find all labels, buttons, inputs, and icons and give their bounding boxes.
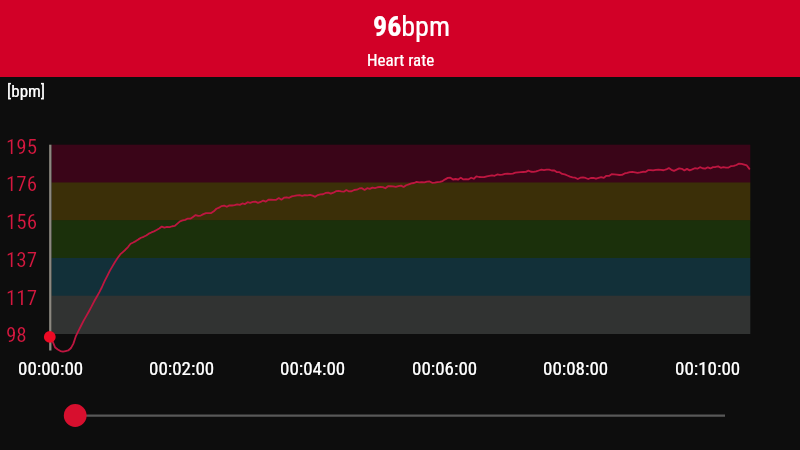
button[interactable]: Playback position slider bbox=[58, 394, 742, 438]
staticText: 176 bbox=[6, 172, 38, 197]
staticText: 156 bbox=[6, 210, 38, 235]
staticText: Heart rate bbox=[367, 50, 435, 70]
staticText: 00:08:00 bbox=[543, 357, 609, 379]
staticText: 98 bbox=[6, 323, 27, 348]
staticText: 117 bbox=[6, 286, 38, 311]
staticText: [bpm] bbox=[7, 81, 46, 101]
staticText: 00:06:00 bbox=[412, 357, 478, 379]
staticText: 00:00:00 bbox=[18, 357, 84, 379]
staticText: 00:02:00 bbox=[149, 357, 215, 379]
staticText: 96bpm bbox=[373, 10, 450, 43]
staticText: 195 bbox=[6, 135, 38, 160]
staticText: 00:04:00 bbox=[280, 357, 346, 379]
staticText: 137 bbox=[6, 248, 38, 273]
staticText: 00:10:00 bbox=[675, 357, 741, 379]
button[interactable]: 96bpm bbox=[0, 0, 800, 77]
